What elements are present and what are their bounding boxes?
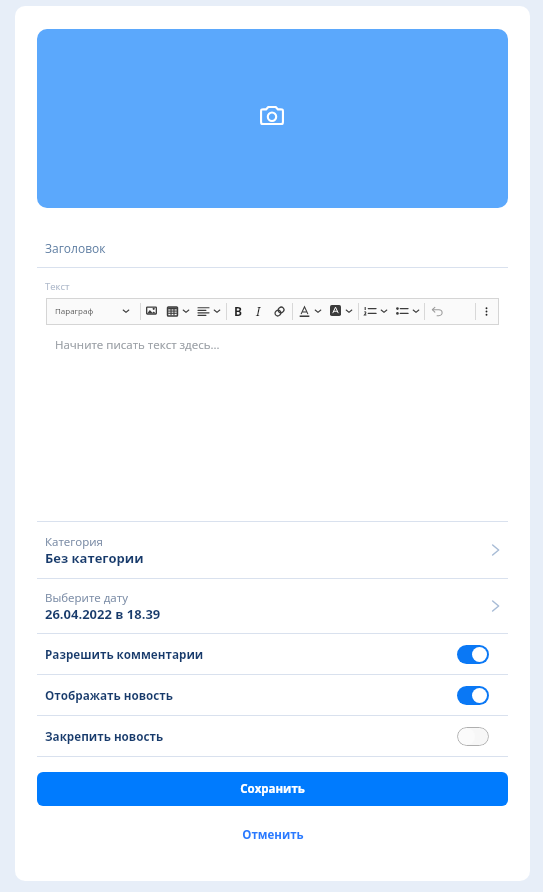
staticText: Заголовок [45, 240, 106, 256]
staticText: Отображать новость [45, 687, 173, 703]
staticText: Сохранить [240, 781, 305, 797]
button[interactable] [37, 633, 508, 674]
other: Открыть [490, 544, 502, 556]
button[interactable]: Изображение [146, 305, 157, 316]
button[interactable] [37, 578, 508, 633]
staticText: Начните писать текст здесь... [55, 337, 220, 353]
staticText: Отменить [242, 827, 304, 843]
button[interactable]: Цвет фона [330, 305, 341, 316]
staticText: B [234, 303, 243, 319]
staticText: I [256, 303, 261, 319]
button[interactable]: Таблица [167, 306, 178, 317]
button[interactable]: Сохранить [37, 772, 508, 806]
button[interactable]: Ещё [181, 306, 191, 316]
button[interactable]: Ещё [344, 306, 354, 316]
button[interactable]: Цвет текста [299, 306, 310, 317]
button[interactable]: Добавить изображение [37, 29, 508, 208]
button[interactable]: Отменить [432, 306, 443, 317]
button[interactable]: B [234, 303, 244, 320]
other: Открыть [490, 600, 502, 612]
staticText: Разрешить комментарии [45, 646, 204, 662]
button[interactable] [37, 674, 508, 715]
button[interactable]: Ещё [212, 306, 222, 316]
staticText: Параграф [55, 305, 94, 316]
button[interactable] [37, 521, 508, 578]
button[interactable]: Выравнивание [198, 306, 209, 317]
button[interactable]: Ещё [411, 306, 421, 316]
button[interactable] [37, 715, 508, 756]
button[interactable]: Отменить [37, 821, 508, 849]
staticText: Выберите дату [45, 590, 128, 606]
button[interactable]: Ещё [481, 306, 492, 317]
staticText: 26.04.2022 в 18.39 [45, 605, 161, 623]
staticText: Без категории [45, 549, 144, 567]
staticText: Категория [45, 534, 103, 550]
button[interactable]: I [256, 303, 264, 320]
button[interactable]: Ещё [379, 306, 389, 316]
button[interactable]: Ещё [313, 306, 323, 316]
button[interactable]: Ещё [121, 306, 131, 316]
button[interactable]: Ссылка [273, 305, 286, 318]
button[interactable]: Нумерованный список [364, 305, 376, 317]
staticText: Закрепить новость [45, 728, 164, 744]
staticText: Текст [45, 280, 70, 293]
button[interactable]: Маркированный список [396, 305, 408, 317]
